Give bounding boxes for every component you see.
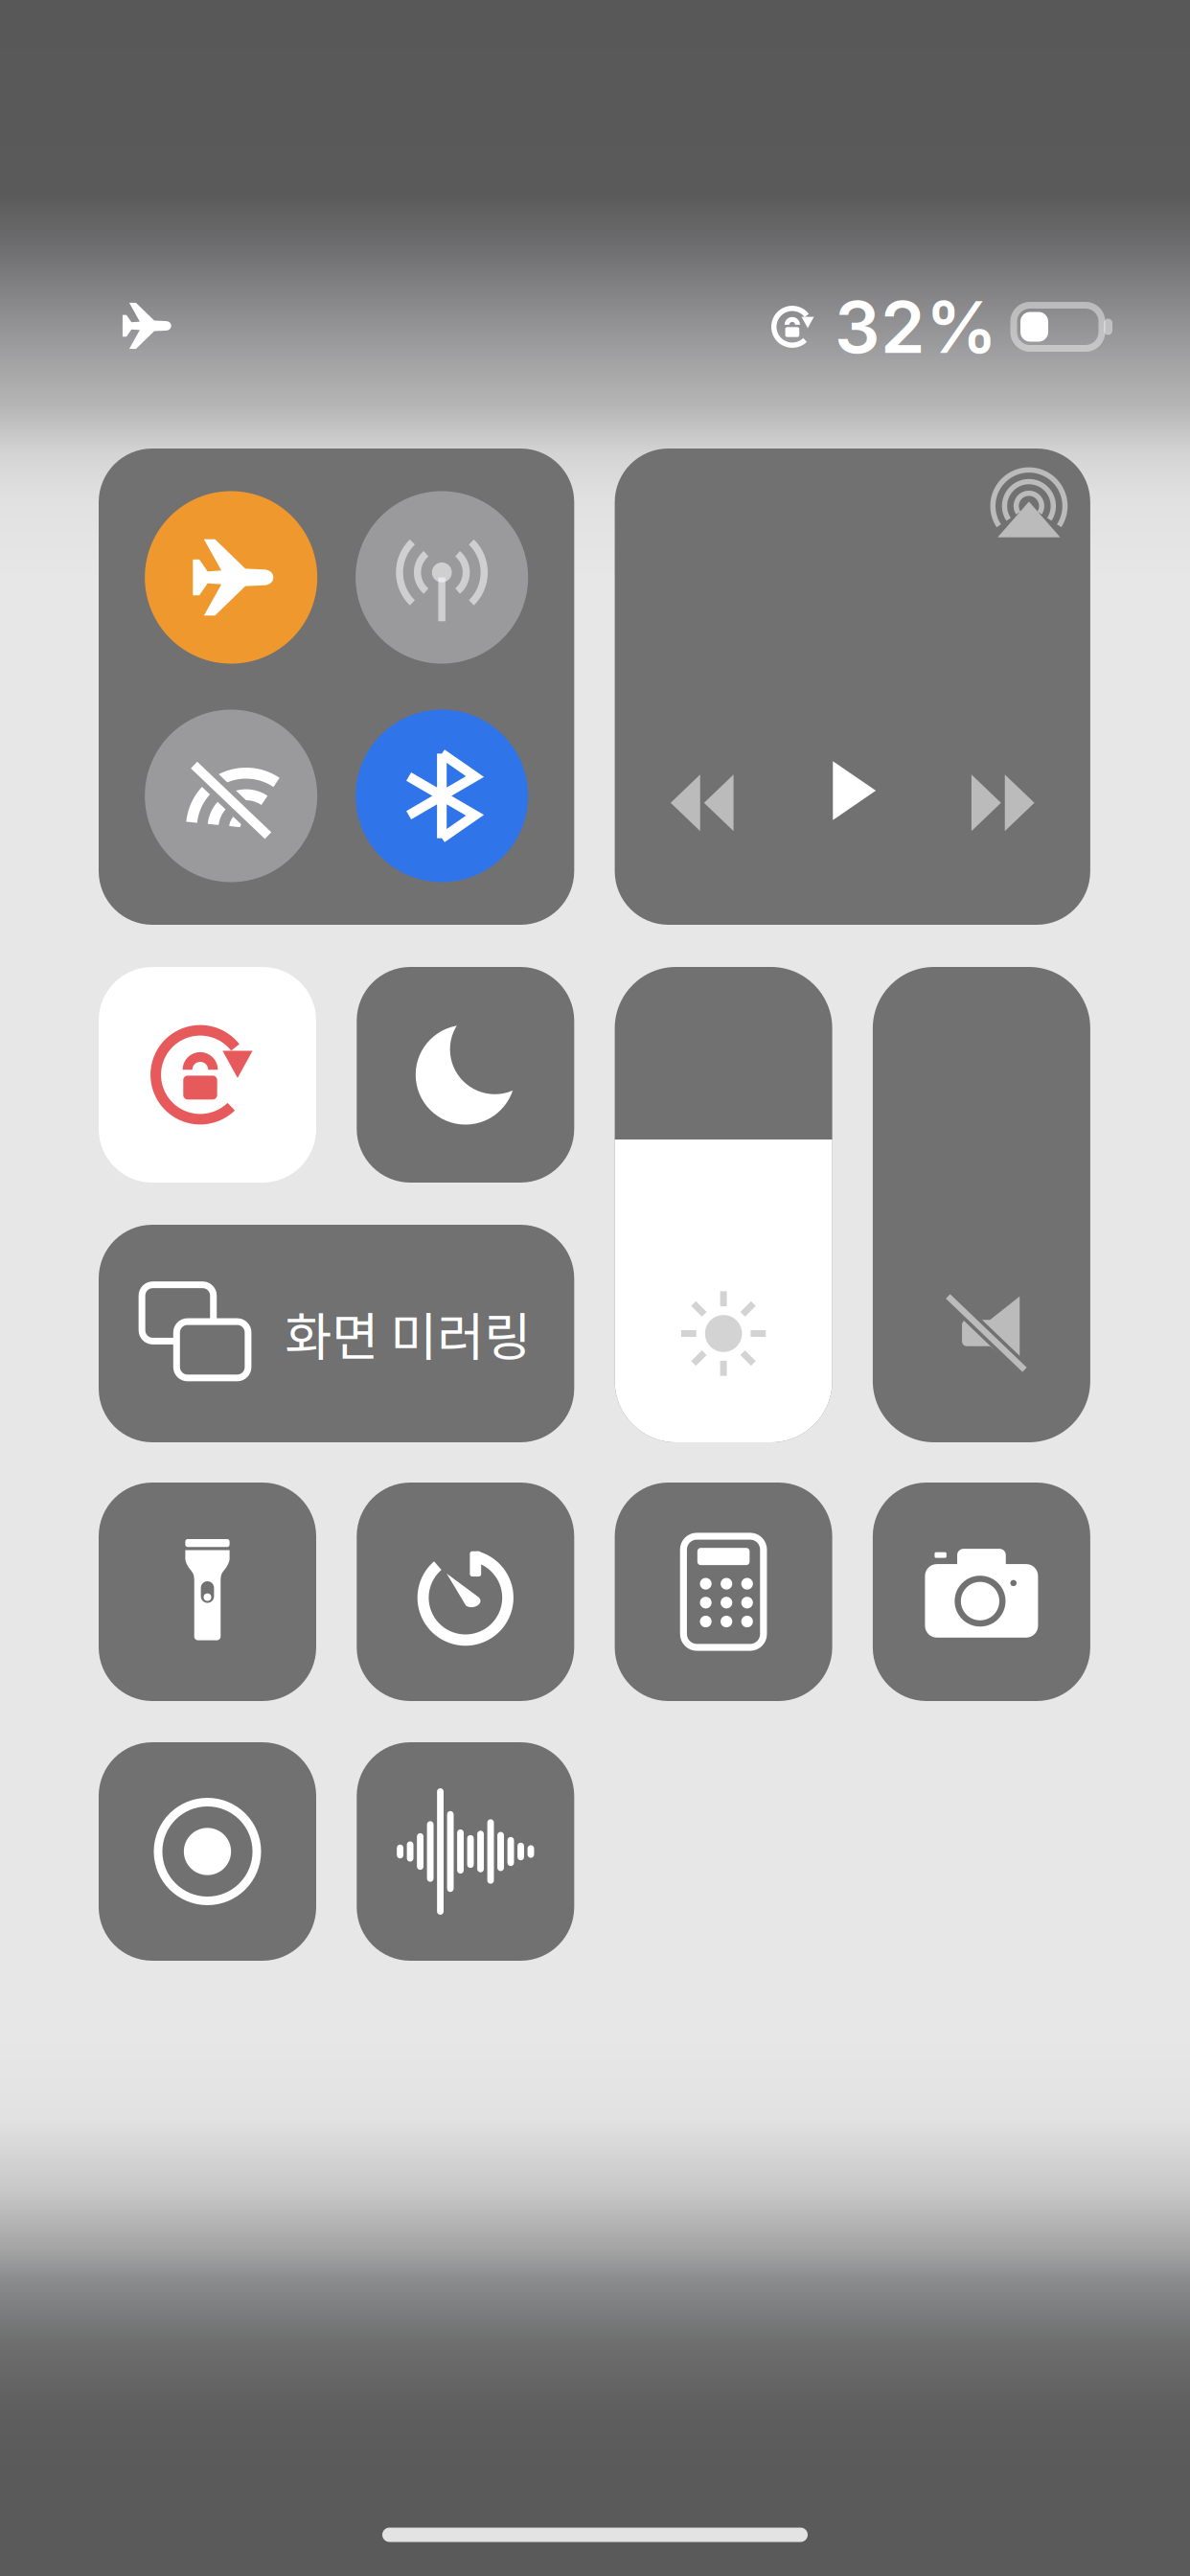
button[interactable]: Wi-Fi bbox=[145, 710, 317, 882]
button[interactable]: Airplane Mode bbox=[145, 491, 317, 664]
button[interactable]: Flashlight bbox=[99, 1483, 316, 1701]
button[interactable]: Screen Mirroring bbox=[99, 1225, 574, 1442]
staticText: 32% bbox=[835, 283, 997, 370]
staticText: 화면 미러링 bbox=[285, 1297, 531, 1371]
button[interactable]: Volume bbox=[873, 967, 1090, 1442]
button[interactable]: Camera bbox=[873, 1483, 1090, 1701]
button[interactable]: Cellular Data bbox=[356, 491, 528, 664]
button[interactable]: Timer bbox=[357, 1483, 574, 1701]
button[interactable]: Hearing bbox=[357, 1742, 574, 1961]
button[interactable]: Brightness bbox=[615, 967, 832, 1442]
button[interactable]: Bluetooth bbox=[356, 710, 528, 882]
button[interactable]: Screen Recording bbox=[99, 1742, 316, 1961]
button[interactable]: Rotation Lock bbox=[99, 967, 316, 1183]
button[interactable]: Now Playing bbox=[615, 448, 1090, 925]
button[interactable]: Calculator bbox=[615, 1483, 832, 1701]
button[interactable]: Do Not Disturb bbox=[357, 967, 574, 1183]
